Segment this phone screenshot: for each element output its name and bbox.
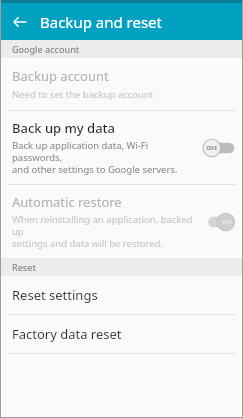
button[interactable]: Back up my data — [0, 111, 243, 184]
staticText: OFF — [206, 144, 218, 152]
staticText: Back up application data, Wi-Fi password… — [12, 139, 197, 176]
staticText: Google account — [12, 43, 80, 55]
staticText: Need to set the backup account — [12, 88, 154, 101]
staticText: Back up my data — [12, 119, 116, 137]
button[interactable]: Navigate up — [6, 8, 34, 36]
other: OFF switch off — [203, 138, 235, 158]
button[interactable]: Backup account — [0, 58, 243, 110]
staticText: Automatic restore — [12, 193, 122, 211]
button[interactable]: Factory data reset — [0, 315, 243, 353]
button[interactable]: Automatic restore — [0, 185, 243, 258]
staticText: Reset settings — [12, 286, 98, 304]
staticText: Backup and reset — [40, 12, 162, 32]
staticText: When reinstalling an application, backed… — [12, 213, 197, 250]
staticText: Backup account — [12, 67, 109, 85]
other: ON switch on — [203, 212, 235, 232]
button[interactable]: Reset settings — [0, 276, 243, 314]
staticText: ON — [222, 218, 232, 226]
staticText: Factory data reset — [12, 325, 122, 343]
staticText: Reset — [12, 261, 36, 273]
